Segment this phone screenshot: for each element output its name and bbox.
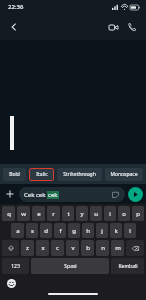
button[interactable]: Strikethrough: [57, 168, 102, 181]
button[interactable]: d: [40, 223, 52, 238]
button[interactable]: 123: [2, 258, 29, 274]
staticText: l: [129, 227, 131, 235]
button[interactable]: Monospace: [105, 168, 143, 181]
button[interactable]: Voice call: [124, 19, 140, 35]
button[interactable]: k: [110, 223, 122, 238]
button[interactable]: e: [32, 206, 45, 221]
staticText: m: [115, 244, 121, 252]
staticText: k: [114, 227, 118, 235]
button[interactable]: s: [26, 223, 38, 238]
staticText: x: [41, 244, 45, 252]
button[interactable]: b: [81, 240, 94, 256]
button[interactable]: Attach: [3, 187, 17, 201]
staticText: i: [109, 210, 111, 218]
button[interactable]: j: [96, 223, 108, 238]
button[interactable]: z: [21, 240, 34, 256]
button[interactable]: p: [132, 206, 144, 221]
button[interactable]: o: [118, 206, 130, 221]
button[interactable]: a: [11, 223, 24, 238]
button[interactable]: n: [96, 240, 109, 256]
staticText: Bold: [9, 171, 20, 178]
staticText: b: [86, 244, 90, 252]
staticText: o: [122, 210, 126, 218]
button[interactable]: Send: [128, 187, 143, 202]
staticText: c: [56, 244, 59, 252]
staticText: Kembali: [118, 263, 138, 270]
button[interactable]: x: [36, 240, 49, 256]
staticText: 22:36: [8, 3, 24, 11]
staticText: t: [67, 210, 70, 218]
button[interactable]: g: [68, 223, 80, 238]
staticText: Spasi: [64, 263, 77, 270]
button[interactable]: y: [76, 206, 88, 221]
button[interactable]: c: [51, 240, 64, 256]
button[interactable]: Bold: [3, 168, 26, 181]
button[interactable]: Shift: [2, 240, 19, 256]
button[interactable]: Emoji: [6, 278, 17, 289]
staticText: h: [86, 227, 90, 235]
staticText: 123: [11, 263, 20, 270]
staticText: d: [44, 227, 48, 235]
staticText: a: [16, 227, 20, 235]
staticText: cek: [48, 191, 58, 199]
button[interactable]: Spasi: [31, 258, 109, 274]
button[interactable]: f: [54, 223, 66, 238]
button[interactable]: Kembali: [111, 258, 144, 274]
button[interactable]: v: [66, 240, 79, 256]
button[interactable]: q: [2, 206, 15, 221]
button[interactable]: h: [82, 223, 94, 238]
button[interactable]: Italic: [29, 168, 54, 181]
staticText: u: [94, 210, 98, 218]
button[interactable]: w: [17, 206, 30, 221]
staticText: y: [80, 210, 84, 218]
staticText: q: [7, 210, 11, 218]
button[interactable]: t: [62, 206, 74, 221]
staticText: e: [37, 210, 41, 218]
button[interactable]: Stickers: [111, 190, 120, 199]
staticText: n: [101, 244, 105, 252]
staticText: s: [31, 227, 34, 235]
staticText: Monospace: [110, 171, 138, 178]
staticText: f: [59, 227, 62, 235]
button[interactable]: l: [124, 223, 136, 238]
button[interactable]: r: [47, 206, 60, 221]
button[interactable]: Cek cek: [19, 187, 125, 202]
staticText: Cek cek: [24, 191, 47, 199]
staticText: g: [72, 227, 76, 235]
staticText: w: [21, 210, 26, 218]
staticText: z: [26, 244, 29, 252]
staticText: r: [52, 210, 55, 218]
staticText: v: [71, 244, 75, 252]
button[interactable]: Video call: [105, 19, 121, 35]
staticText: Italic: [36, 171, 48, 178]
staticText: Strikethrough: [63, 171, 96, 178]
staticText: p: [136, 210, 140, 218]
button[interactable]: Backspace: [126, 240, 144, 256]
staticText: j: [101, 227, 103, 235]
button[interactable]: u: [90, 206, 102, 221]
button[interactable]: Back: [6, 19, 22, 35]
button[interactable]: m: [111, 240, 124, 256]
button[interactable]: i: [104, 206, 116, 221]
